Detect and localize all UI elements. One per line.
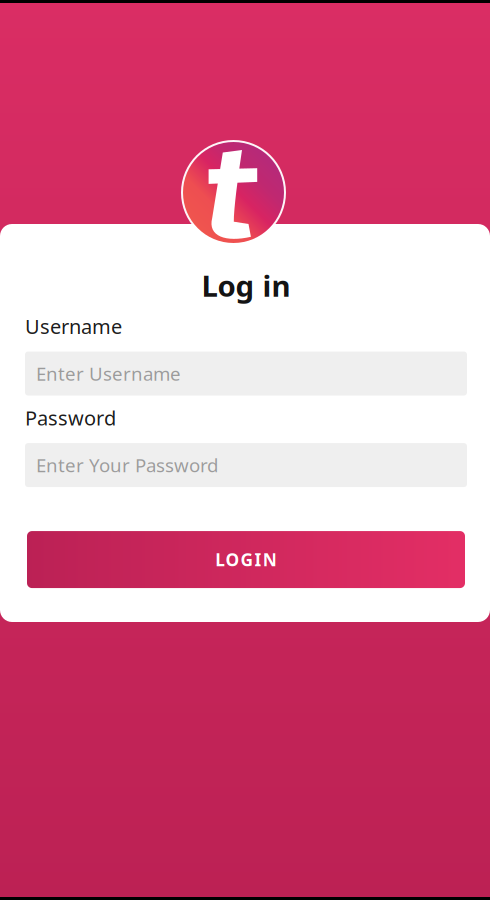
- staticText: Enter Your Password: [36, 453, 218, 477]
- staticText: LOGIN: [215, 548, 277, 571]
- staticText: Log in: [201, 266, 290, 305]
- staticText: Enter Username: [36, 361, 181, 386]
- button[interactable]: LOGIN: [25, 531, 467, 588]
- staticText: Password: [25, 404, 116, 431]
- staticText: Username: [25, 313, 122, 340]
